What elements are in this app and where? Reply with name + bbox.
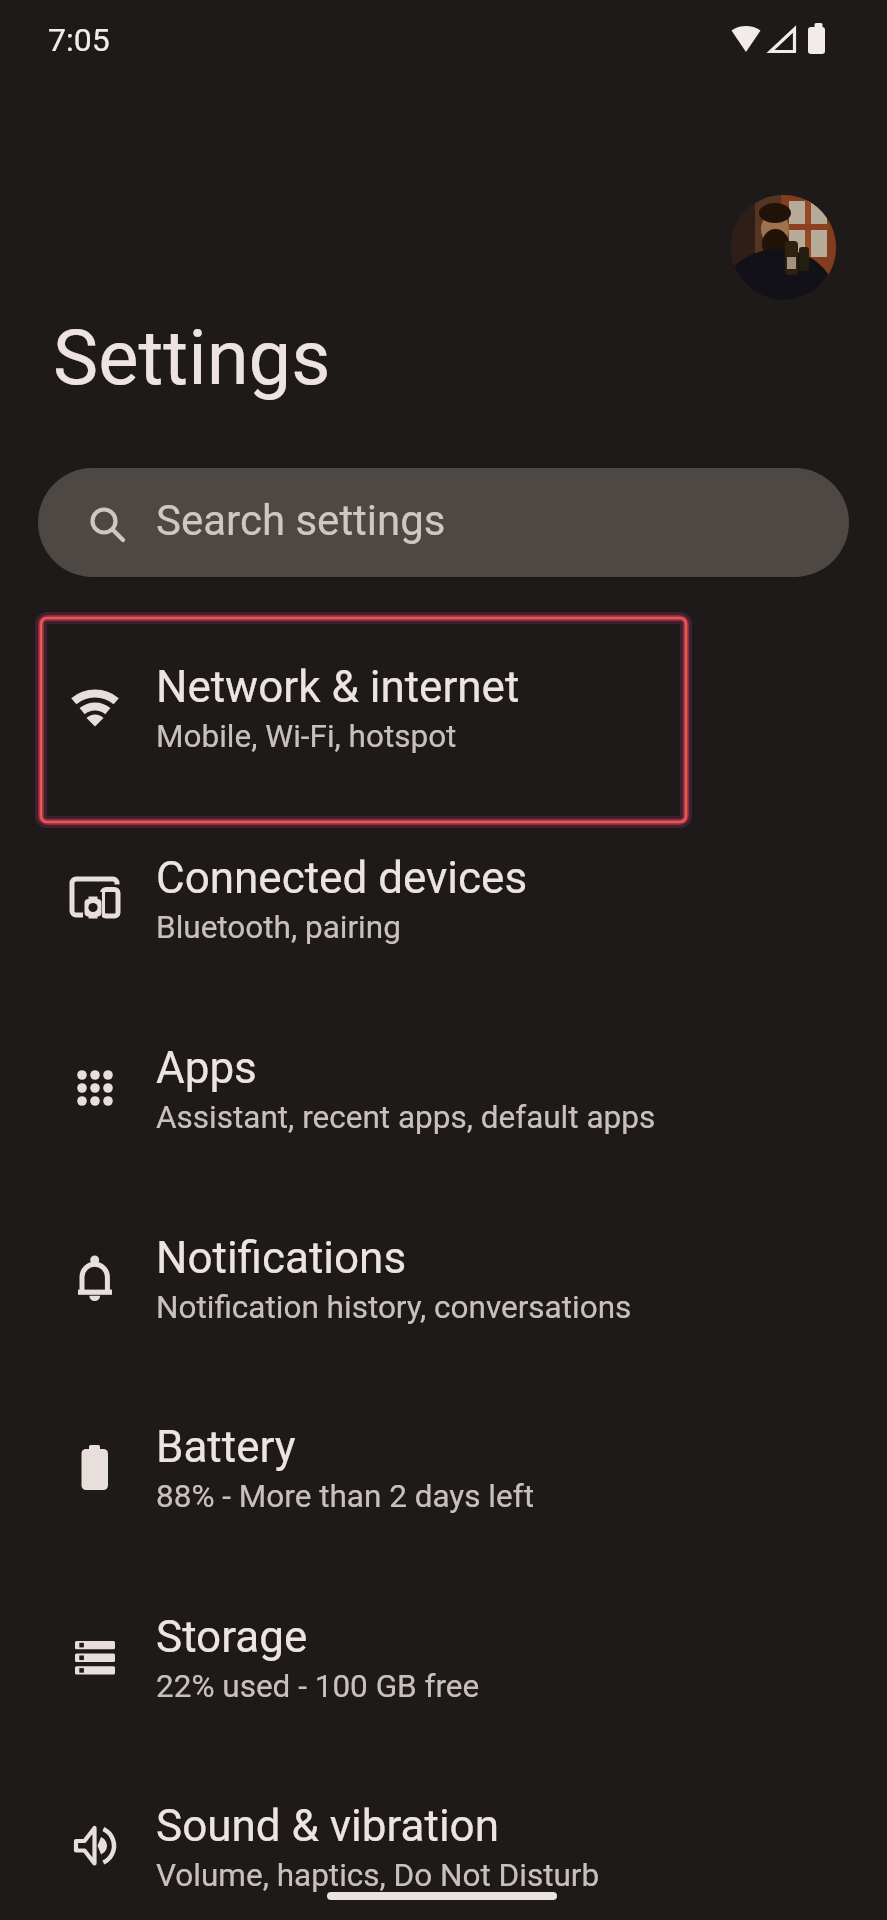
staticText: Notifications (156, 1232, 407, 1284)
button[interactable]: Battery (0, 1372, 887, 1558)
staticText: Sound & vibration (156, 1800, 499, 1852)
staticText: Connected devices (156, 852, 528, 904)
staticText: 7:05 (48, 21, 110, 59)
button[interactable]: Notifications (0, 1183, 887, 1369)
staticText: Assistant, recent apps, default apps (156, 1099, 656, 1136)
staticText: Network & internet (156, 661, 520, 713)
staticText: Settings (53, 313, 331, 402)
staticText: Storage (156, 1611, 308, 1663)
button[interactable]: Sound & vibration (0, 1751, 887, 1920)
staticText: Mobile, Wi-Fi, hotspot (156, 718, 457, 755)
button[interactable]: Apps (0, 993, 887, 1179)
staticText: 22% used - 100 GB free (156, 1668, 480, 1705)
button[interactable]: Connected devices (0, 803, 887, 989)
button[interactable]: Search settings (38, 468, 849, 577)
staticText: Battery (156, 1421, 296, 1473)
staticText: Bluetooth, pairing (156, 909, 401, 946)
staticText: Apps (156, 1042, 257, 1094)
button[interactable]: Storage (0, 1562, 887, 1748)
staticText: 88% - More than 2 days left (156, 1478, 534, 1515)
staticText: Volume, haptics, Do Not Disturb (156, 1857, 600, 1894)
staticText: Notification history, conversations (156, 1289, 632, 1326)
staticText: Search settings (156, 496, 446, 545)
button[interactable] (731, 195, 836, 300)
button[interactable]: Network & internet (0, 612, 887, 798)
